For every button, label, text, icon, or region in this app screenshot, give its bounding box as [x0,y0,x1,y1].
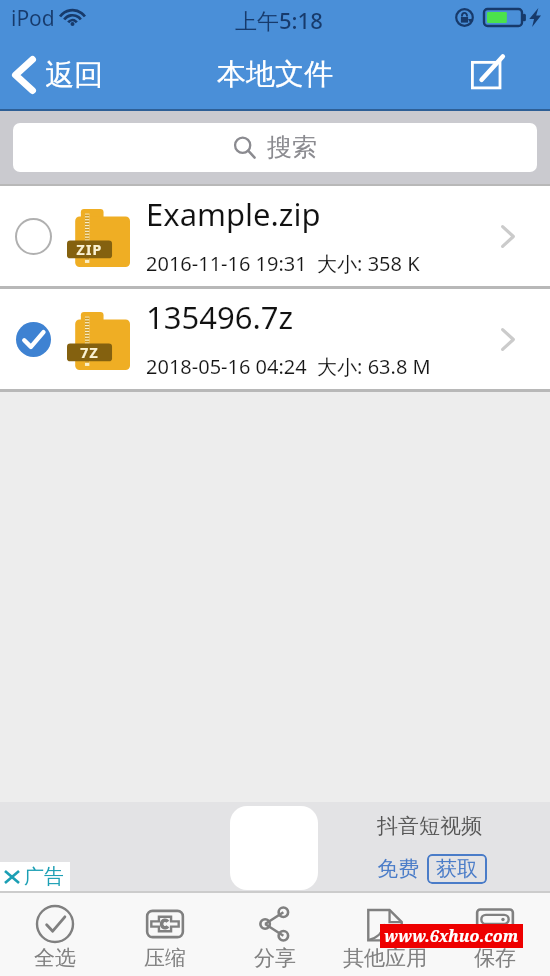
button[interactable]: 保存 [440,893,550,976]
button[interactable]: 获取 [427,854,487,884]
staticText: 7Z [67,343,112,362]
staticText: 本地文件 [217,56,333,93]
staticText: 分享 [254,945,296,971]
staticText: 获取 [436,856,478,882]
staticText: 上午5:18 [235,5,323,35]
button[interactable]: ZIP [0,186,550,286]
button[interactable]: 搜索 [13,123,537,172]
staticText: www.6xhuo.com [384,925,519,947]
button[interactable]: 返回 [0,48,113,102]
button[interactable]: 广告 [0,862,70,891]
button[interactable]: Compose [468,52,508,89]
staticText: 搜索 [267,132,317,163]
staticText: 广告 [24,864,64,889]
button[interactable]: 其他应用 [330,893,440,976]
staticText: Example.zip [146,193,321,235]
staticText: 压缩 [144,945,186,971]
staticText: 2016-11-16 19:31 大小: 358 K [146,250,420,277]
button[interactable]: 压缩 [110,893,220,976]
staticText: 抖音短视频 [377,813,482,839]
button[interactable]: 7Z [0,289,550,389]
staticText: 免费 [377,856,419,882]
staticText: 2018-05-16 04:24 大小: 63.8 M [146,353,431,380]
staticText: 其他应用 [343,945,427,971]
button[interactable]: 全选 [0,893,110,976]
staticText: 135496.7z [146,296,294,338]
staticText: 保存 [474,945,516,971]
staticText: iPod [11,4,55,33]
staticText: 返回 [45,57,103,94]
staticText: ZIP [67,240,112,259]
button[interactable]: 分享 [220,893,330,976]
staticText: 全选 [34,945,76,971]
